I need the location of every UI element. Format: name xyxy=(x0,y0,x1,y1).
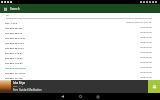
button[interactable]: Open navigation menu xyxy=(0,4,10,13)
staticText: GTC06A-14S-5S xyxy=(5,51,23,54)
button[interactable]: GTC006-28-22S xyxy=(0,25,160,30)
staticText: GTC06A-14S-6S xyxy=(5,56,23,59)
button[interactable]: GTC06A-20-15SLC xyxy=(0,65,160,70)
staticText: Amphenol xyxy=(140,66,152,69)
staticText: Amphenol xyxy=(140,36,152,39)
button[interactable]: GTC-1 ACP xyxy=(0,20,160,25)
staticText: Isha Kriya xyxy=(13,81,25,85)
staticText: GTC006-28-61P xyxy=(5,31,23,34)
staticText: Amphenol xyxy=(140,51,152,54)
staticText: GTC006-28-61PY xyxy=(5,46,25,49)
staticText: Glenair Electric Co Ltd xyxy=(126,21,152,24)
staticText: Amphenol xyxy=(140,26,152,29)
staticText: Amphenol xyxy=(140,46,152,49)
staticText: GTC006-28-61PW xyxy=(5,36,25,39)
staticText: gtc xyxy=(6,14,10,17)
button[interactable]: GTC06A-14S-6S xyxy=(0,55,160,60)
staticText: GTC06A-20-19S xyxy=(5,76,23,79)
staticText: Amphenol xyxy=(140,56,152,59)
staticText: GTC06A-20-15SLC xyxy=(5,66,26,69)
staticText: GTC006-28-61PX xyxy=(5,41,25,44)
staticText: Amphenol xyxy=(140,41,152,44)
button[interactable]: Open app xyxy=(148,80,160,93)
button[interactable]: GTC06A-20-19S xyxy=(0,75,160,80)
button[interactable]: GTC006-28-61P xyxy=(0,30,160,35)
staticText: Amphenol xyxy=(140,61,152,64)
staticText: 2:53 xyxy=(19,85,23,88)
button[interactable]: Recent apps xyxy=(91,93,105,100)
staticText: GTC06A-20-17SLC xyxy=(5,71,26,74)
button[interactable]: GTC006-28-61PY xyxy=(0,45,160,50)
staticText: GTC06A-16S-8S xyxy=(5,61,23,64)
button[interactable]: GTC006-28-61PX xyxy=(0,40,160,45)
staticText: Amphenol xyxy=(140,71,152,74)
staticText: GTC-1 ACP xyxy=(5,21,18,24)
button[interactable]: GTC006-28-61PW xyxy=(0,35,160,40)
staticText: Search xyxy=(10,7,20,11)
staticText: Free Guided Meditation xyxy=(13,88,42,92)
staticText: FREE xyxy=(13,85,18,88)
staticText: GTC006-28-22S xyxy=(5,26,23,29)
staticText: Amphenol xyxy=(140,76,152,79)
button[interactable]: Back xyxy=(55,93,69,100)
button[interactable]: GTC06A-16S-8S xyxy=(0,60,160,65)
staticText: Amphenol xyxy=(140,31,152,34)
button[interactable]: GTC06A-14S-5S xyxy=(0,50,160,55)
button[interactable]: GTC06A-20-17SLC xyxy=(0,70,160,75)
button[interactable]: Home xyxy=(73,93,87,100)
